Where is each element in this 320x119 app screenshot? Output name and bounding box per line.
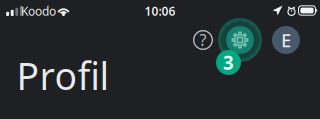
button[interactable]: Help xyxy=(190,27,216,53)
staticText: 3 xyxy=(223,50,234,75)
staticText: Profil xyxy=(16,51,109,100)
button[interactable]: Settings xyxy=(217,17,263,63)
button[interactable]: 3 notifications xyxy=(216,50,241,75)
staticText: 10:06 xyxy=(144,3,175,19)
button[interactable]: Account xyxy=(272,26,300,54)
staticText: E xyxy=(281,28,291,52)
staticText: ? xyxy=(199,29,206,50)
staticText: Koodo xyxy=(21,3,56,19)
